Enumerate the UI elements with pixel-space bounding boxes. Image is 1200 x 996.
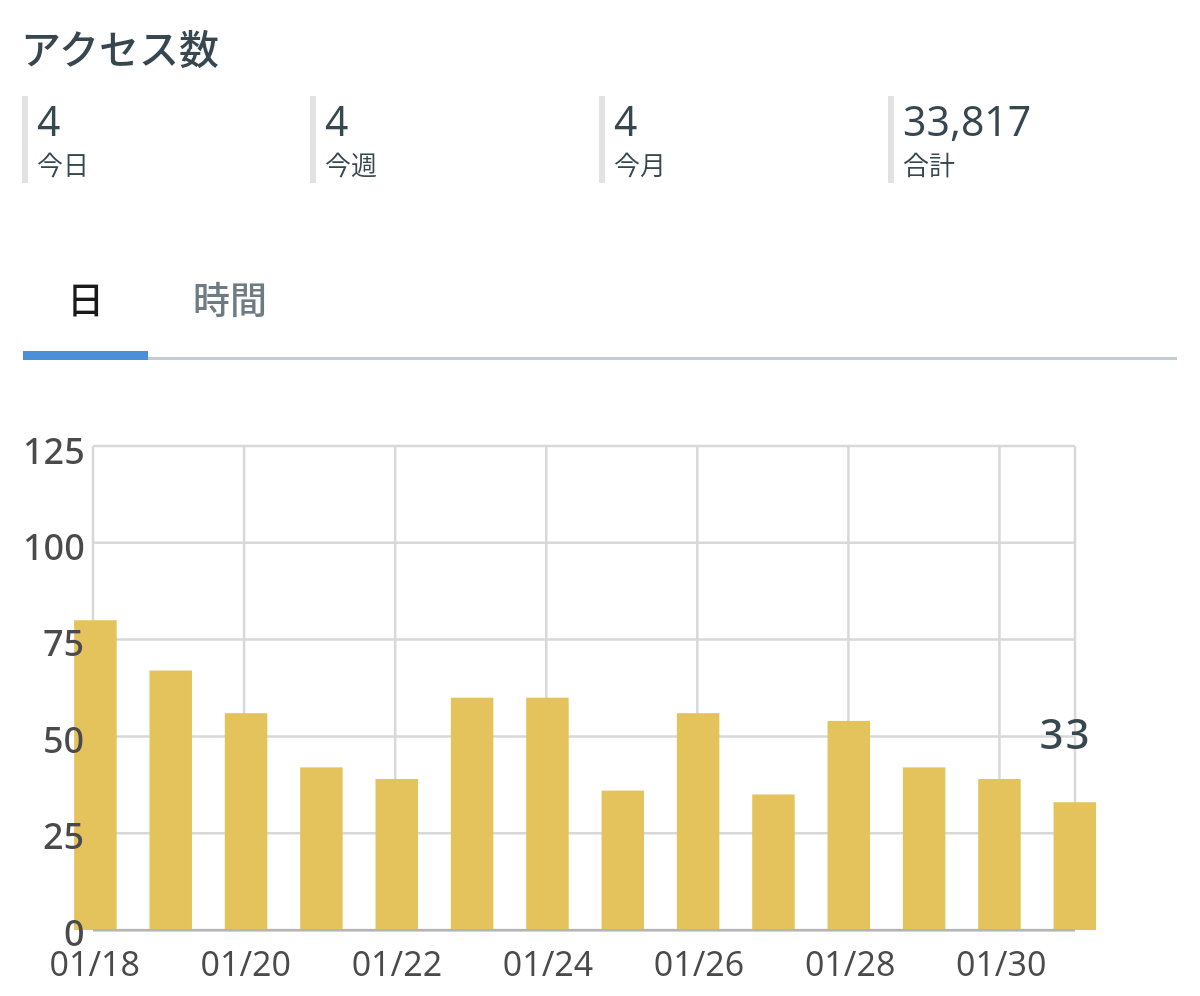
staticText: 時間	[193, 271, 267, 325]
staticText: 4	[325, 92, 349, 148]
staticText: 今月	[614, 145, 667, 183]
staticText: 今日	[37, 145, 90, 183]
staticText: 日	[67, 271, 104, 325]
button[interactable]: 時間	[148, 253, 312, 343]
button[interactable]: 4	[310, 96, 599, 191]
staticText: 今週	[325, 145, 378, 183]
button[interactable]: 33,817	[888, 96, 1177, 191]
staticText: 33,817	[903, 92, 1032, 148]
staticText: 4	[614, 92, 638, 148]
button[interactable]: 4	[22, 96, 310, 191]
button[interactable]: 日	[23, 253, 148, 343]
staticText: 4	[37, 92, 61, 148]
staticText: 合計	[903, 145, 956, 183]
staticText: アクセス数	[21, 18, 219, 76]
button[interactable]: 4	[599, 96, 888, 191]
